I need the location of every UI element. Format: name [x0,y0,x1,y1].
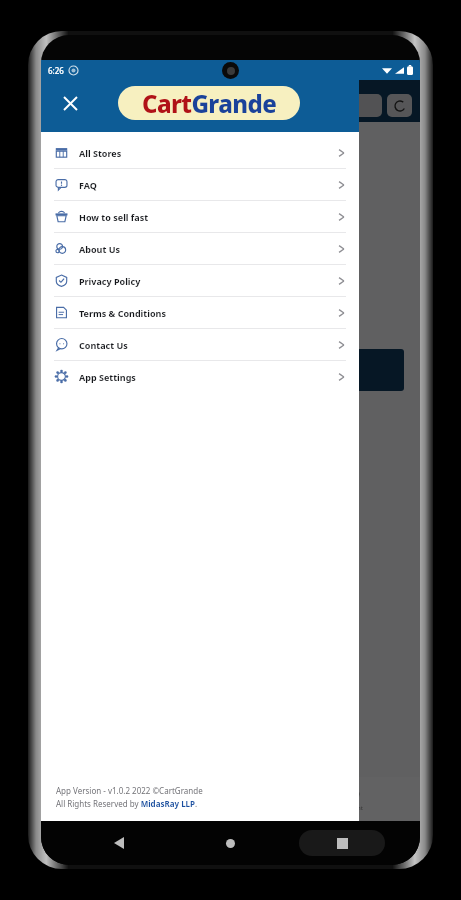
staticText: Privacy Policy [79,275,141,287]
staticText: Terms & Conditions [79,307,166,319]
staticText: FAQ [79,179,97,191]
button[interactable]: Privacy Policy [41,265,359,296]
staticText: Industry [123,157,163,171]
button[interactable]: FAQ [41,169,359,200]
staticText: All Rights Reserved by MidasRay LLP. [56,798,198,809]
staticText: Account [179,804,202,812]
staticText: Account [98,804,121,812]
staticText: CartGrande [142,87,277,120]
staticText: How to sell fast [79,211,149,223]
button[interactable]: Home [174,821,286,865]
button[interactable]: All Stores [41,137,359,168]
staticText: Account [340,804,363,812]
staticText: Contact Us [79,339,128,351]
button[interactable]: Terms & Conditions [41,297,359,328]
button[interactable]: CartGrande [118,86,300,120]
button[interactable]: Back [63,821,174,865]
button[interactable]: About Us [41,233,359,264]
staticText: 6:26 [48,65,64,76]
button[interactable]: App Settings [41,361,359,392]
staticText: App Version - v1.0.2 2022 ©CartGrande [56,785,203,796]
staticText: App Settings [79,371,136,383]
staticText: Food [123,308,147,322]
button[interactable]: Recent apps [286,821,398,865]
button[interactable]: Contact Us [41,329,359,360]
button[interactable]: How to sell fast [41,201,359,232]
staticText: All Stores [79,147,122,159]
button[interactable]: Close menu [55,88,85,118]
staticText: About Us [79,243,120,255]
